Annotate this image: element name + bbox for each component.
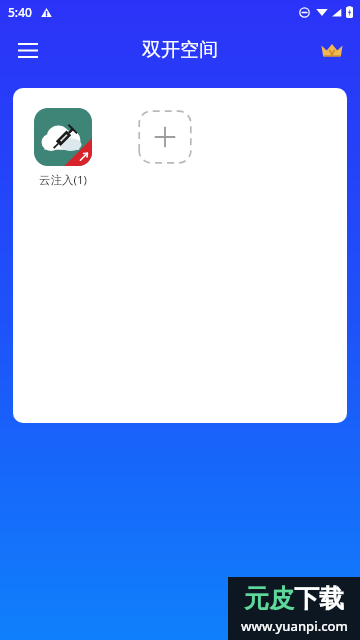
button[interactable]: 云注入(1) [33,108,93,188]
staticText: 下载 [294,583,344,614]
staticText: 双开空间 [142,38,218,62]
button[interactable]: Add app [136,108,194,166]
button[interactable]: Menu [6,28,50,72]
staticText: www.yuanpi.com [241,617,348,635]
staticText: 5:40 [8,4,32,20]
staticText: 元皮 [244,583,294,614]
button[interactable]: VIP [312,30,352,70]
staticText: 云注入(1) [39,172,87,188]
